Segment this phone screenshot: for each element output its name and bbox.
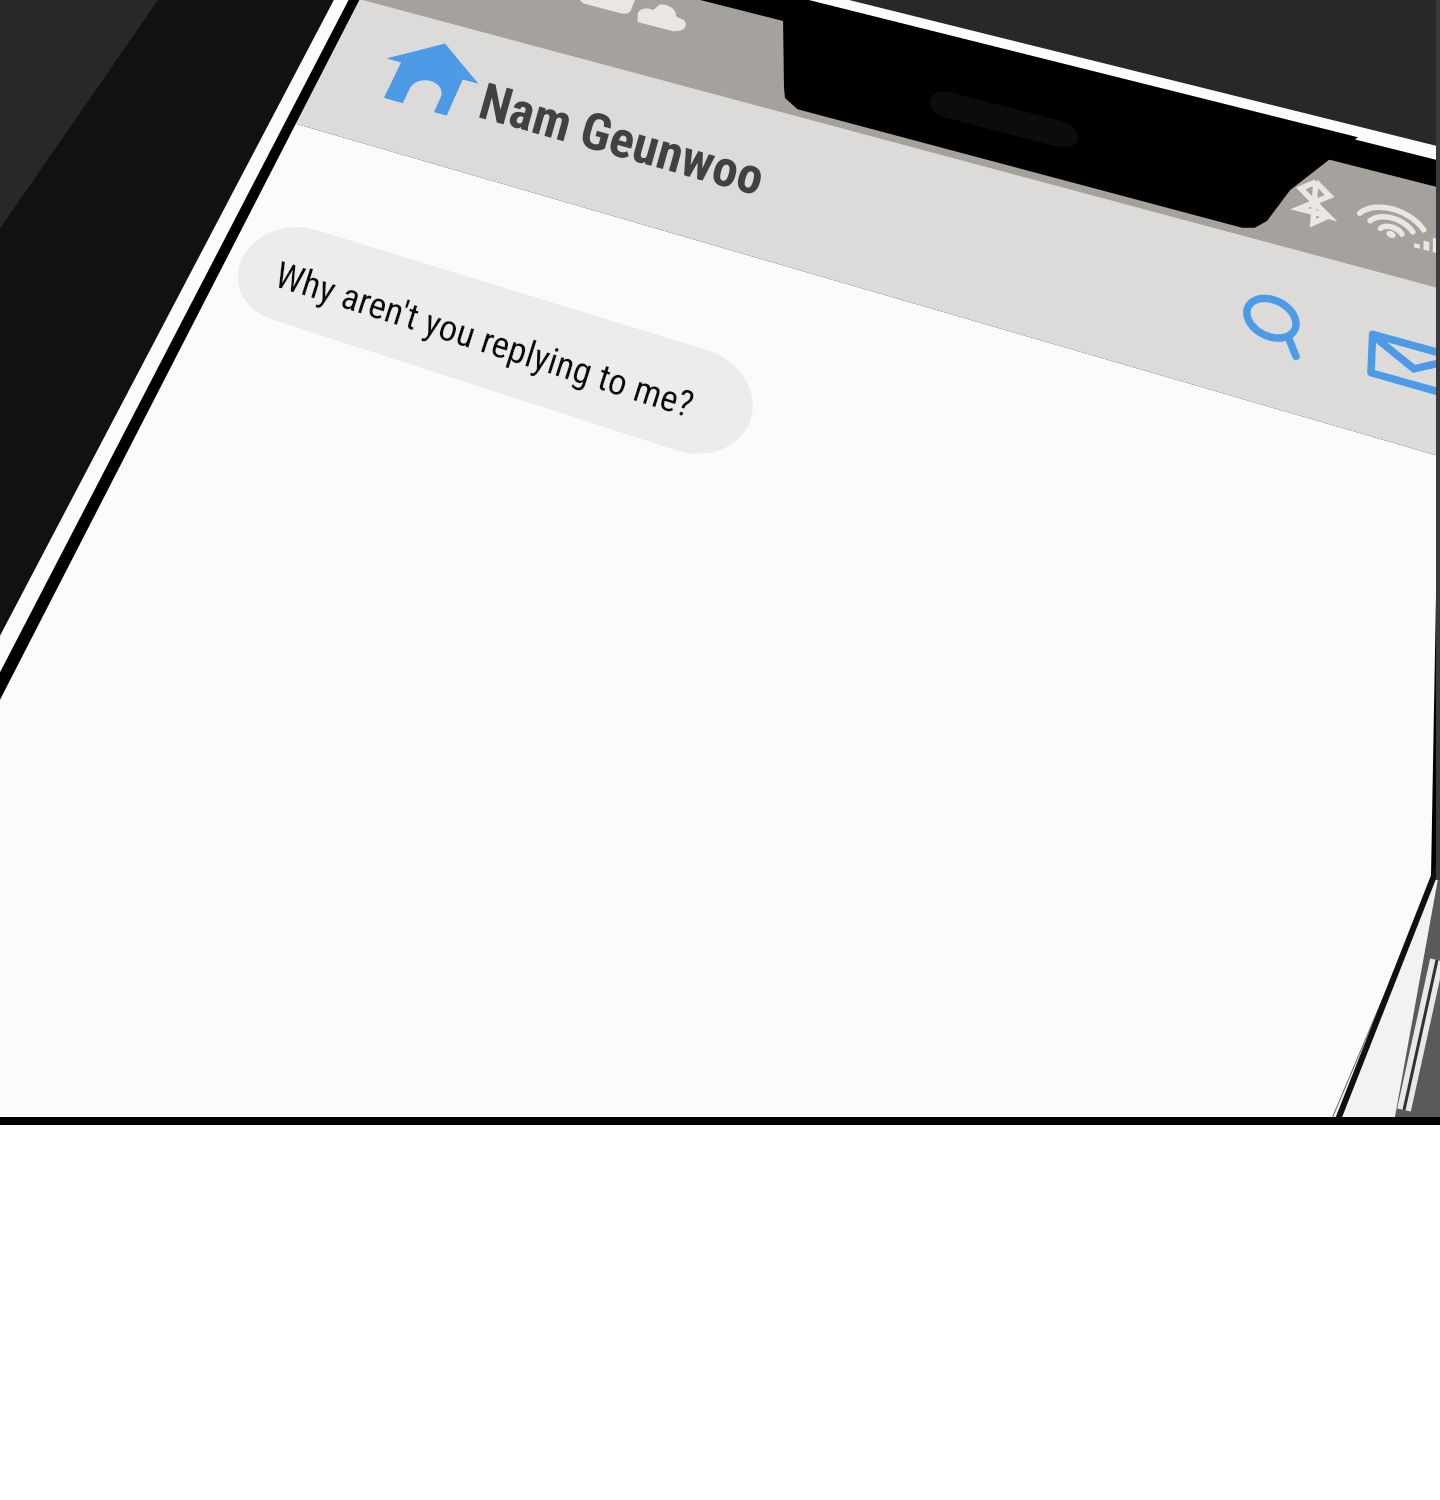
button[interactable]: Chat with Nam Geunwoo: [0, 0, 1440, 1500]
